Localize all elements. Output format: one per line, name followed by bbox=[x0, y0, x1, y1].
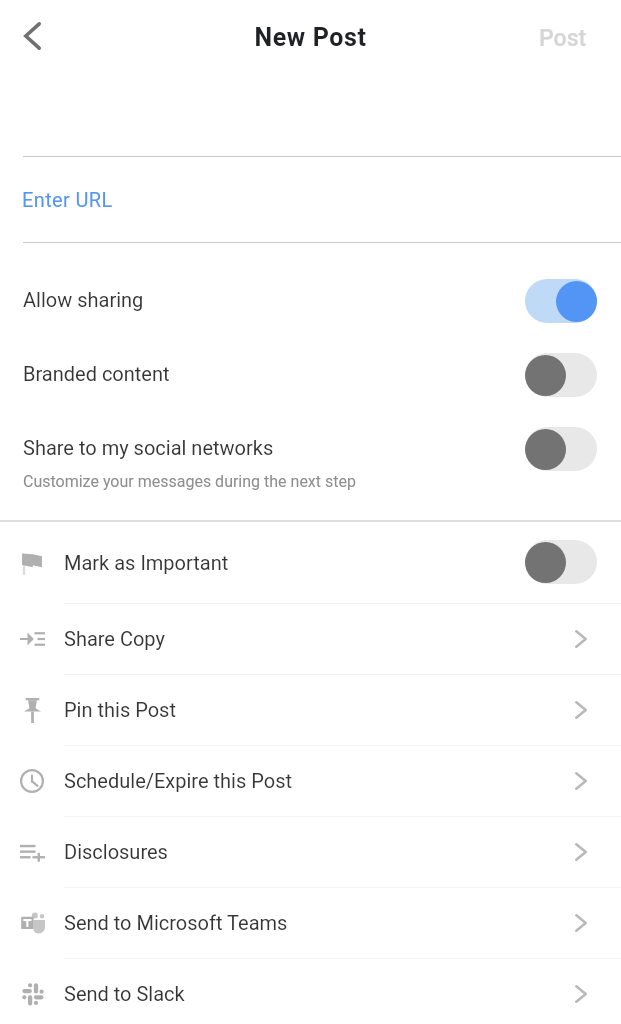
button[interactable]: Branded content bbox=[0, 339, 621, 413]
button[interactable]: Send to Microsoft Teams bbox=[0, 888, 621, 958]
button[interactable]: Share to my social networks bbox=[0, 413, 621, 520]
button[interactable]: Mark as Important bbox=[0, 521, 621, 603]
staticText: Disclosures bbox=[64, 840, 168, 863]
button[interactable]: Share Copy bbox=[0, 604, 621, 674]
button[interactable]: Off bbox=[525, 427, 597, 471]
button[interactable]: Pin this Post bbox=[0, 675, 621, 745]
staticText: Send to Slack bbox=[64, 982, 185, 1005]
staticText: Post bbox=[539, 25, 587, 52]
button[interactable]: Off bbox=[525, 353, 597, 397]
staticText: Share to my social networks bbox=[23, 436, 274, 459]
staticText: Enter URL bbox=[22, 188, 113, 211]
button[interactable]: Post bbox=[523, 12, 603, 62]
staticText: Branded content bbox=[23, 362, 170, 385]
button[interactable]: Disclosures bbox=[0, 817, 621, 887]
staticText: Pin this Post bbox=[64, 698, 176, 721]
staticText: Customize your messages during the next … bbox=[23, 472, 356, 491]
button[interactable]: Allow sharing bbox=[0, 265, 621, 339]
staticText: New Post bbox=[0, 23, 621, 52]
button[interactable]: Off bbox=[525, 540, 597, 584]
staticText: Allow sharing bbox=[23, 288, 144, 311]
staticText: Send to Microsoft Teams bbox=[64, 911, 288, 934]
button[interactable]: On bbox=[525, 279, 597, 323]
button[interactable]: Enter URL bbox=[0, 157, 621, 242]
staticText: Schedule/Expire this Post bbox=[64, 769, 292, 792]
staticText: Share Copy bbox=[64, 627, 165, 650]
staticText: Mark as Important bbox=[64, 551, 229, 574]
button[interactable]: Schedule/Expire this Post bbox=[0, 746, 621, 816]
button[interactable]: Send to Slack bbox=[0, 959, 621, 1024]
button[interactable]: Back bbox=[7, 11, 57, 61]
